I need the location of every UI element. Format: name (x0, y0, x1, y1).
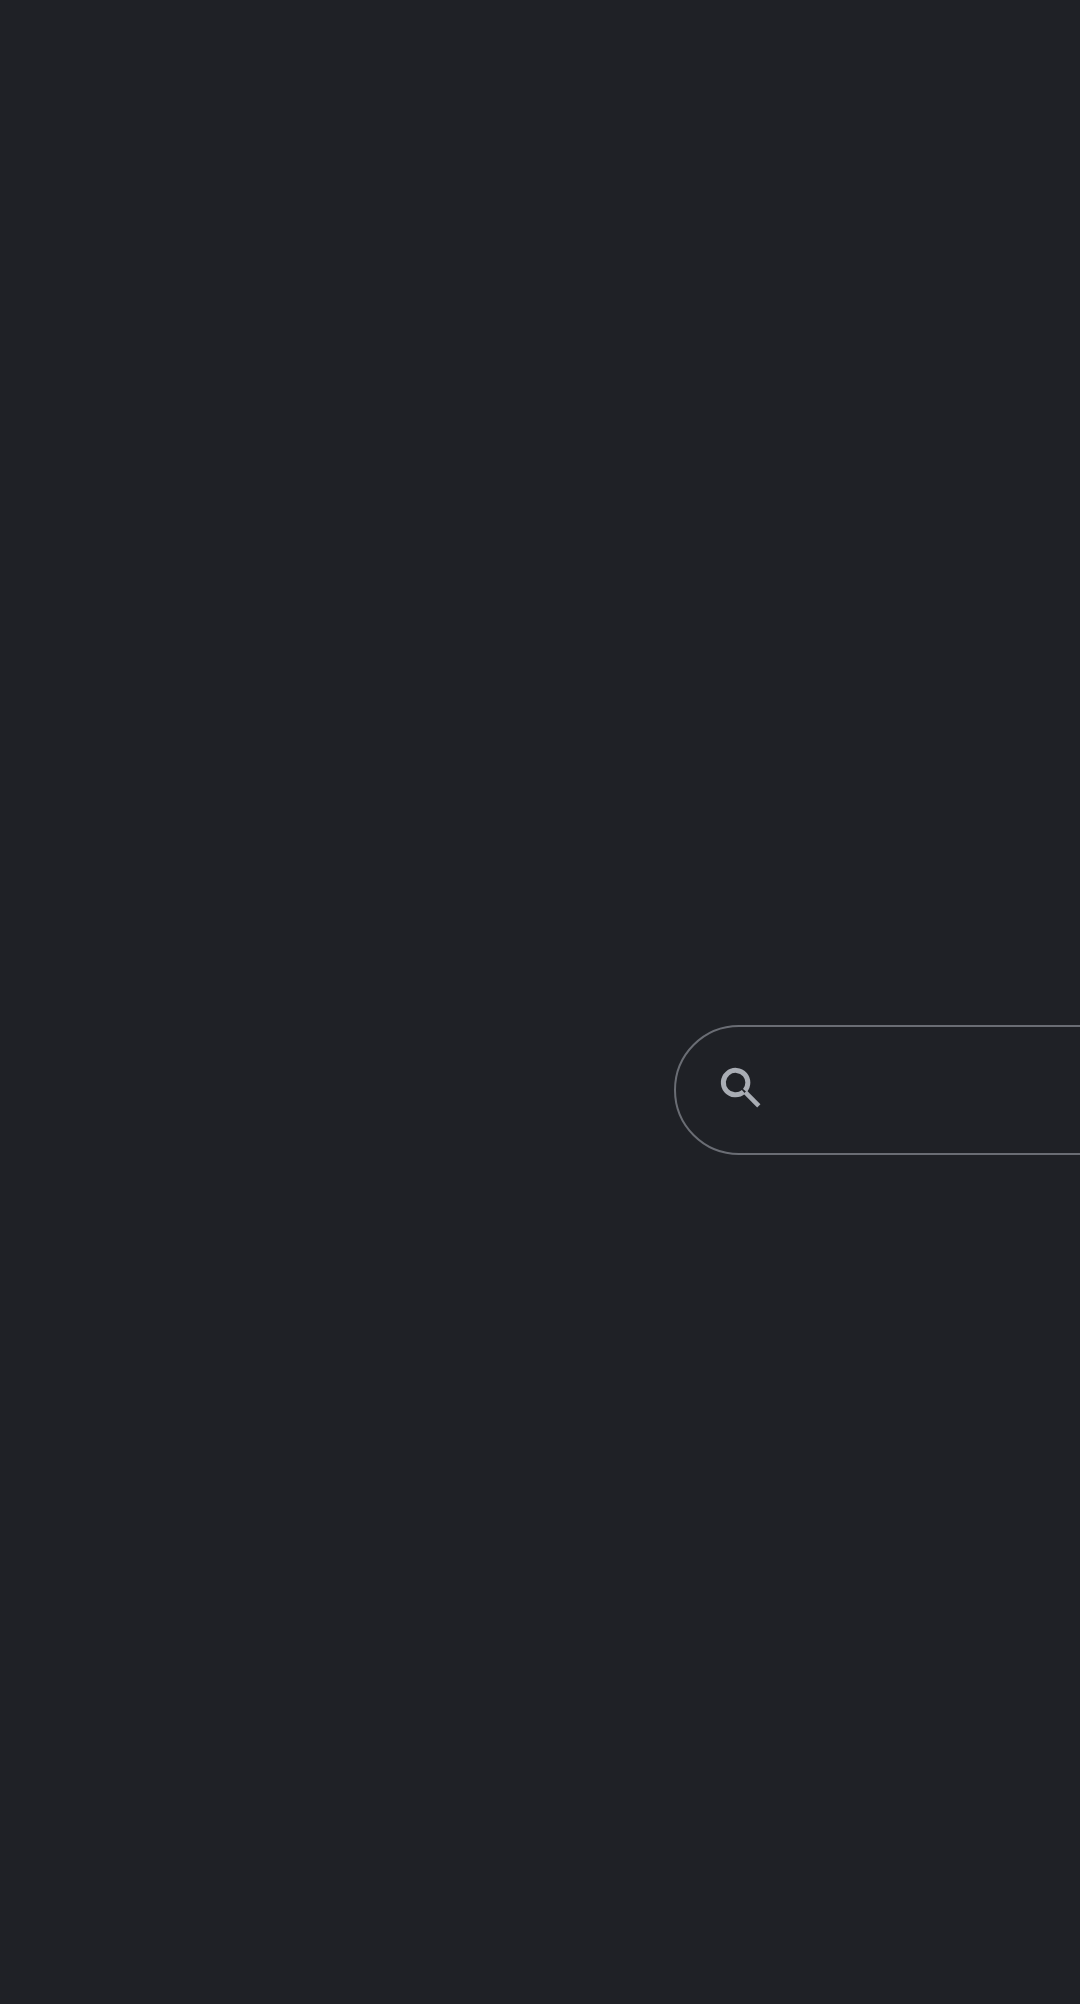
button[interactable]: Search (674, 1025, 1080, 1155)
